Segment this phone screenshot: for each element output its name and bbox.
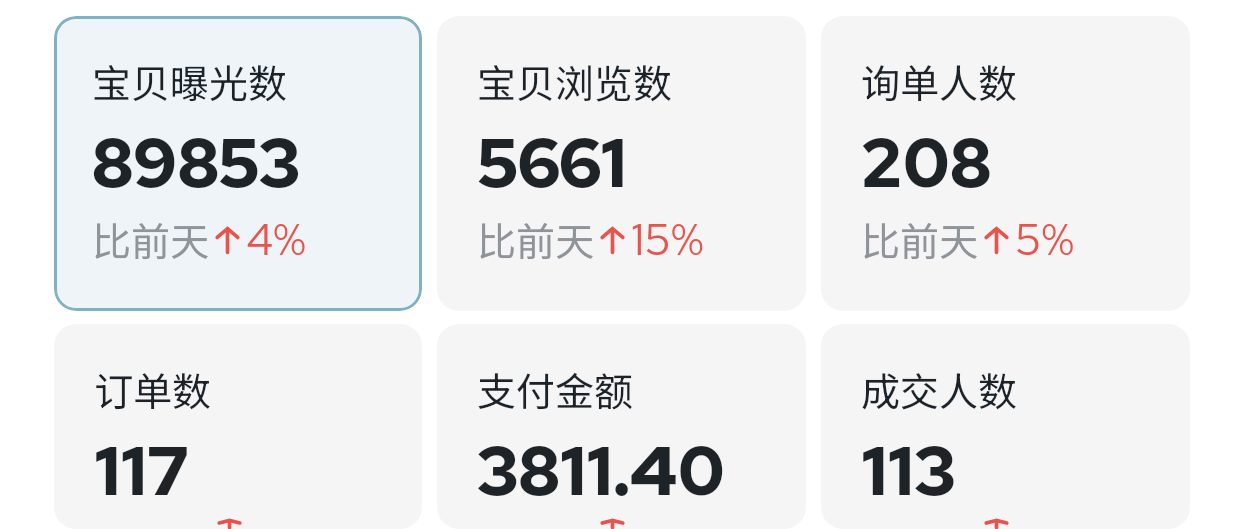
staticText: 订单数 [94, 361, 212, 417]
other: Trending up [213, 220, 242, 258]
staticText: 成交人数 [861, 361, 1018, 417]
staticText: 117 [94, 425, 189, 516]
staticText: 15% [631, 210, 704, 268]
staticText: 支付金额 [477, 361, 634, 417]
staticText: 208 [861, 117, 992, 208]
staticText: 比前天 [477, 211, 595, 267]
staticText: 5661 [477, 117, 627, 208]
staticText: 询单人数 [861, 53, 1018, 109]
staticText: 113 [861, 425, 956, 516]
button[interactable]: 询单人数 [821, 16, 1190, 311]
button[interactable]: 支付金额 [437, 324, 806, 529]
button[interactable]: 订单数 [54, 324, 422, 529]
staticText: 宝贝曝光数 [92, 53, 288, 109]
other: Trending up [215, 518, 244, 529]
staticText: 宝贝浏览数 [477, 53, 673, 109]
staticText: 3811.40 [477, 425, 725, 516]
staticText: 4% [246, 210, 306, 268]
other: Trending up [598, 220, 627, 258]
other: Trending up [598, 518, 627, 529]
staticText: 5% [1015, 210, 1074, 268]
staticText: 比前天 [861, 211, 979, 267]
button[interactable]: 宝贝浏览数 [437, 16, 806, 311]
button[interactable]: 成交人数 [821, 324, 1190, 529]
other: Trending up [982, 518, 1011, 529]
staticText: 比前天 [92, 211, 210, 267]
staticText: 89853 [92, 117, 301, 208]
button[interactable]: 宝贝曝光数 [54, 16, 422, 311]
other: Trending up [982, 220, 1011, 258]
